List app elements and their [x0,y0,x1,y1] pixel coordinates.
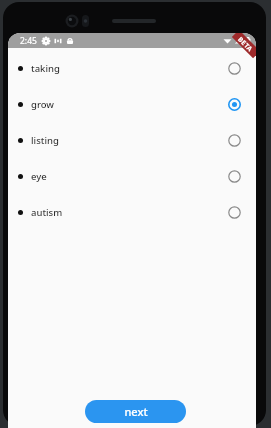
staticText: eye [31,170,47,183]
button[interactable]: Selected grow [224,94,244,114]
staticText: taking [31,62,60,75]
button[interactable]: listing [8,122,256,158]
button[interactable]: autism [8,194,256,230]
staticText: autism [31,206,63,219]
button[interactable]: Select taking [224,58,244,78]
staticText: next [124,404,148,419]
staticText: grow [31,98,54,111]
button[interactable]: grow [8,86,256,122]
staticText: BETA [236,35,255,54]
staticText: 2:45 [20,35,37,47]
button[interactable]: Select eye [224,166,244,186]
button[interactable]: next [85,400,186,423]
staticText: listing [31,134,59,147]
button[interactable]: Select listing [224,130,244,150]
button[interactable]: Select autism [224,202,244,222]
button[interactable]: taking [8,50,256,86]
button[interactable]: eye [8,158,256,194]
